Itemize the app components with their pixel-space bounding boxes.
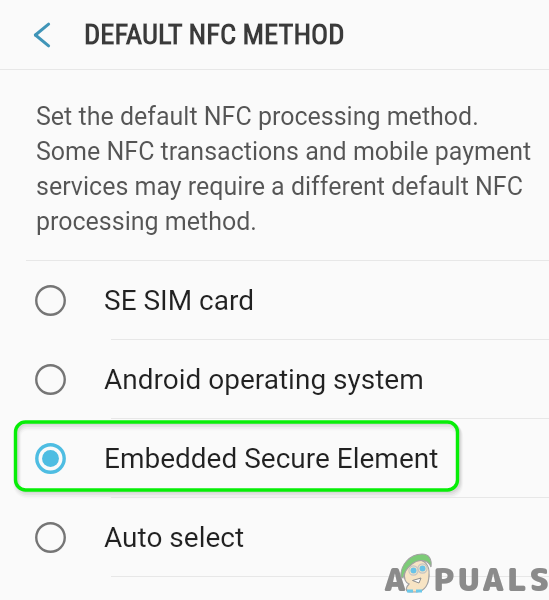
button[interactable]: Android operating system [0, 340, 549, 418]
staticText: Android operating system [104, 363, 424, 396]
staticText: Embedded Secure Element [104, 442, 439, 475]
staticText: DEFAULT NFC METHOD [84, 18, 345, 51]
staticText: APPUALS [384, 557, 549, 600]
button[interactable]: Back [0, 0, 83, 69]
button[interactable]: Embedded Secure Element [0, 419, 549, 497]
staticText: SE SIM card [104, 284, 255, 317]
button[interactable]: Auto select [0, 498, 549, 576]
staticText: Auto select [104, 521, 245, 554]
staticText: Set the default NFC processing method. S… [36, 102, 532, 236]
button[interactable]: SE SIM card [0, 261, 549, 339]
